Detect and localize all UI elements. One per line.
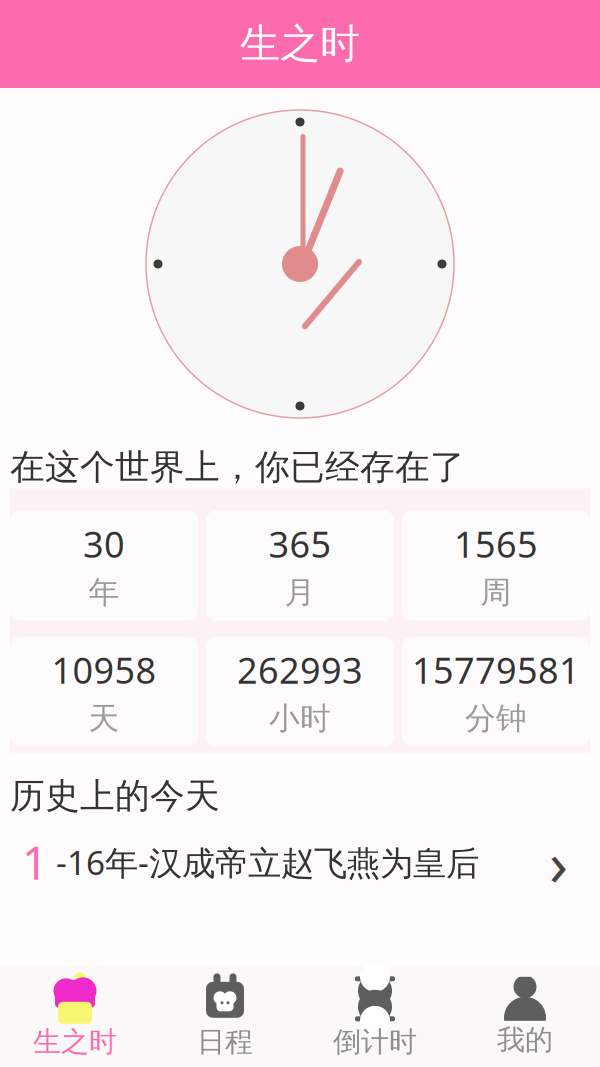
- button[interactable]: 1565: [402, 511, 590, 621]
- button[interactable]: 15779581: [402, 637, 590, 747]
- staticText: -16年-汉成帝立赵飞燕为皇后: [56, 840, 479, 884]
- staticText: 历史上的今天: [10, 775, 220, 817]
- staticText: 年: [88, 574, 119, 611]
- staticText: 1565: [454, 520, 538, 568]
- staticText: 在这个世界上，你已经存在了: [10, 446, 465, 489]
- staticText: 分钟: [465, 700, 527, 737]
- staticText: 倒计时: [333, 1025, 417, 1059]
- staticText: 30: [83, 520, 125, 568]
- staticText: 生之时: [240, 19, 360, 68]
- staticText: 月: [284, 574, 315, 611]
- staticText: ›: [549, 821, 568, 903]
- staticText: 365: [268, 520, 331, 568]
- button[interactable]: 生之时: [0, 967, 150, 1067]
- staticText: 15779581: [412, 646, 580, 694]
- button[interactable]: 365: [206, 511, 394, 621]
- button[interactable]: 倒计时: [300, 967, 450, 1067]
- staticText: 1: [22, 832, 48, 892]
- staticText: 天: [88, 700, 119, 737]
- staticText: 10958: [51, 646, 156, 694]
- button[interactable]: 1: [14, 829, 586, 895]
- button[interactable]: 我的: [450, 967, 600, 1067]
- staticText: 生之时: [33, 1025, 117, 1059]
- staticText: 262993: [237, 646, 363, 694]
- button[interactable]: 30: [10, 511, 198, 621]
- button[interactable]: 日程: [150, 967, 300, 1067]
- staticText: 我的: [497, 1023, 553, 1057]
- button[interactable]: 262993: [206, 637, 394, 747]
- staticText: 周: [480, 574, 511, 611]
- staticText: 日程: [197, 1025, 253, 1059]
- staticText: 小时: [269, 700, 331, 737]
- button[interactable]: 10958: [10, 637, 198, 747]
